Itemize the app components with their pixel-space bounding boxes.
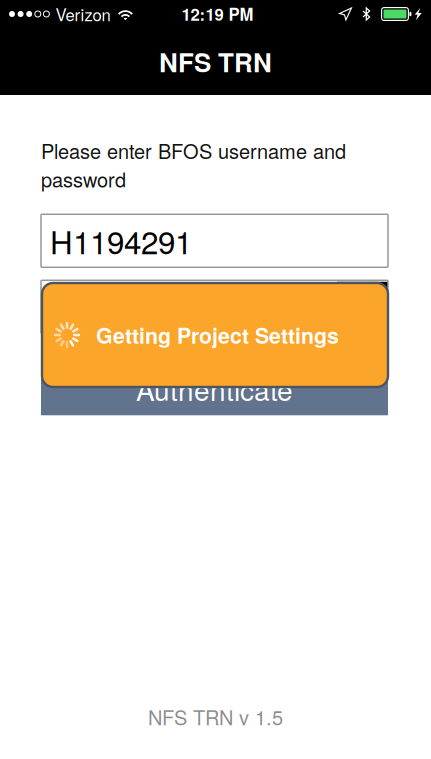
- staticText: Please enter BFOS username and password: [41, 136, 346, 193]
- staticText: NFS TRN: [159, 43, 272, 80]
- staticText: Authenticate: [136, 369, 293, 409]
- staticText: H1194291: [50, 218, 192, 263]
- staticText: 12:19 PM: [181, 2, 253, 26]
- button[interactable]: Authenticate: [41, 362, 388, 415]
- staticText: Getting Project Settings: [96, 320, 339, 350]
- button[interactable]: NFS TRN: [0, 28, 431, 95]
- staticText: NFS TRN v 1.5: [148, 702, 283, 731]
- staticText: Verizon: [55, 2, 110, 26]
